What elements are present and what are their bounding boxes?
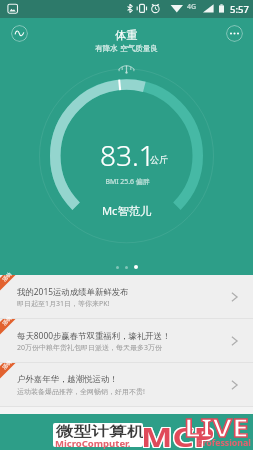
button[interactable]: 我的2015运动成绩单新鲜发布	[0, 275, 253, 319]
staticText: 活动	[1, 271, 12, 282]
staticText: 20万份中粮年货礼包即日派送，每天最多3万份	[17, 343, 163, 353]
staticText: MCP	[141, 420, 215, 450]
staticText: LIVE	[184, 410, 249, 444]
staticText: 活动	[1, 359, 12, 370]
staticText: 5:57	[230, 3, 249, 16]
staticText: 即日起至1月31日，等你来PK!	[17, 299, 110, 309]
staticText: Professional	[197, 437, 252, 448]
button[interactable]: 户外嘉年华，越潮悦运动！	[0, 363, 253, 407]
staticText: Mc智范儿	[0, 203, 253, 218]
staticText: BMI 25.6 偏胖	[1, 177, 253, 186]
button[interactable]: 每天8000步赢春节双重福利，壕礼开送！	[0, 319, 253, 363]
staticText: 运动装备爆品推荐，全网畅销，好用不贵!	[17, 387, 145, 397]
staticText: 户外嘉年华，越潮悦运动！	[17, 374, 118, 385]
staticText: MCP	[141, 418, 215, 450]
staticText: MCP	[141, 419, 215, 450]
staticText: MCP	[140, 418, 214, 450]
staticText: 4G	[187, 2, 197, 12]
staticText: LIVE	[184, 410, 249, 444]
staticText: 体重	[0, 28, 253, 42]
staticText: 83.1	[100, 136, 155, 174]
staticText: MCP	[140, 419, 214, 450]
staticText: MCP	[140, 420, 214, 450]
staticText: MCP	[142, 419, 216, 450]
staticText: 活动	[1, 315, 12, 326]
staticText: 微型计算机	[56, 423, 145, 440]
staticText: MicroComputer.	[55, 438, 131, 450]
button[interactable]: More options	[226, 25, 243, 42]
staticText: 公斤	[150, 154, 168, 165]
staticText: 我的2015运动成绩单新鲜发布	[17, 286, 129, 297]
staticText: 每天8000步赢春节双重福利，壕礼开送！	[17, 330, 171, 341]
staticText: MCP	[142, 420, 216, 450]
staticText: 有降水 空气质量良	[0, 43, 253, 53]
staticText: MCP	[142, 418, 216, 450]
button[interactable]: Heart rate	[11, 25, 28, 42]
